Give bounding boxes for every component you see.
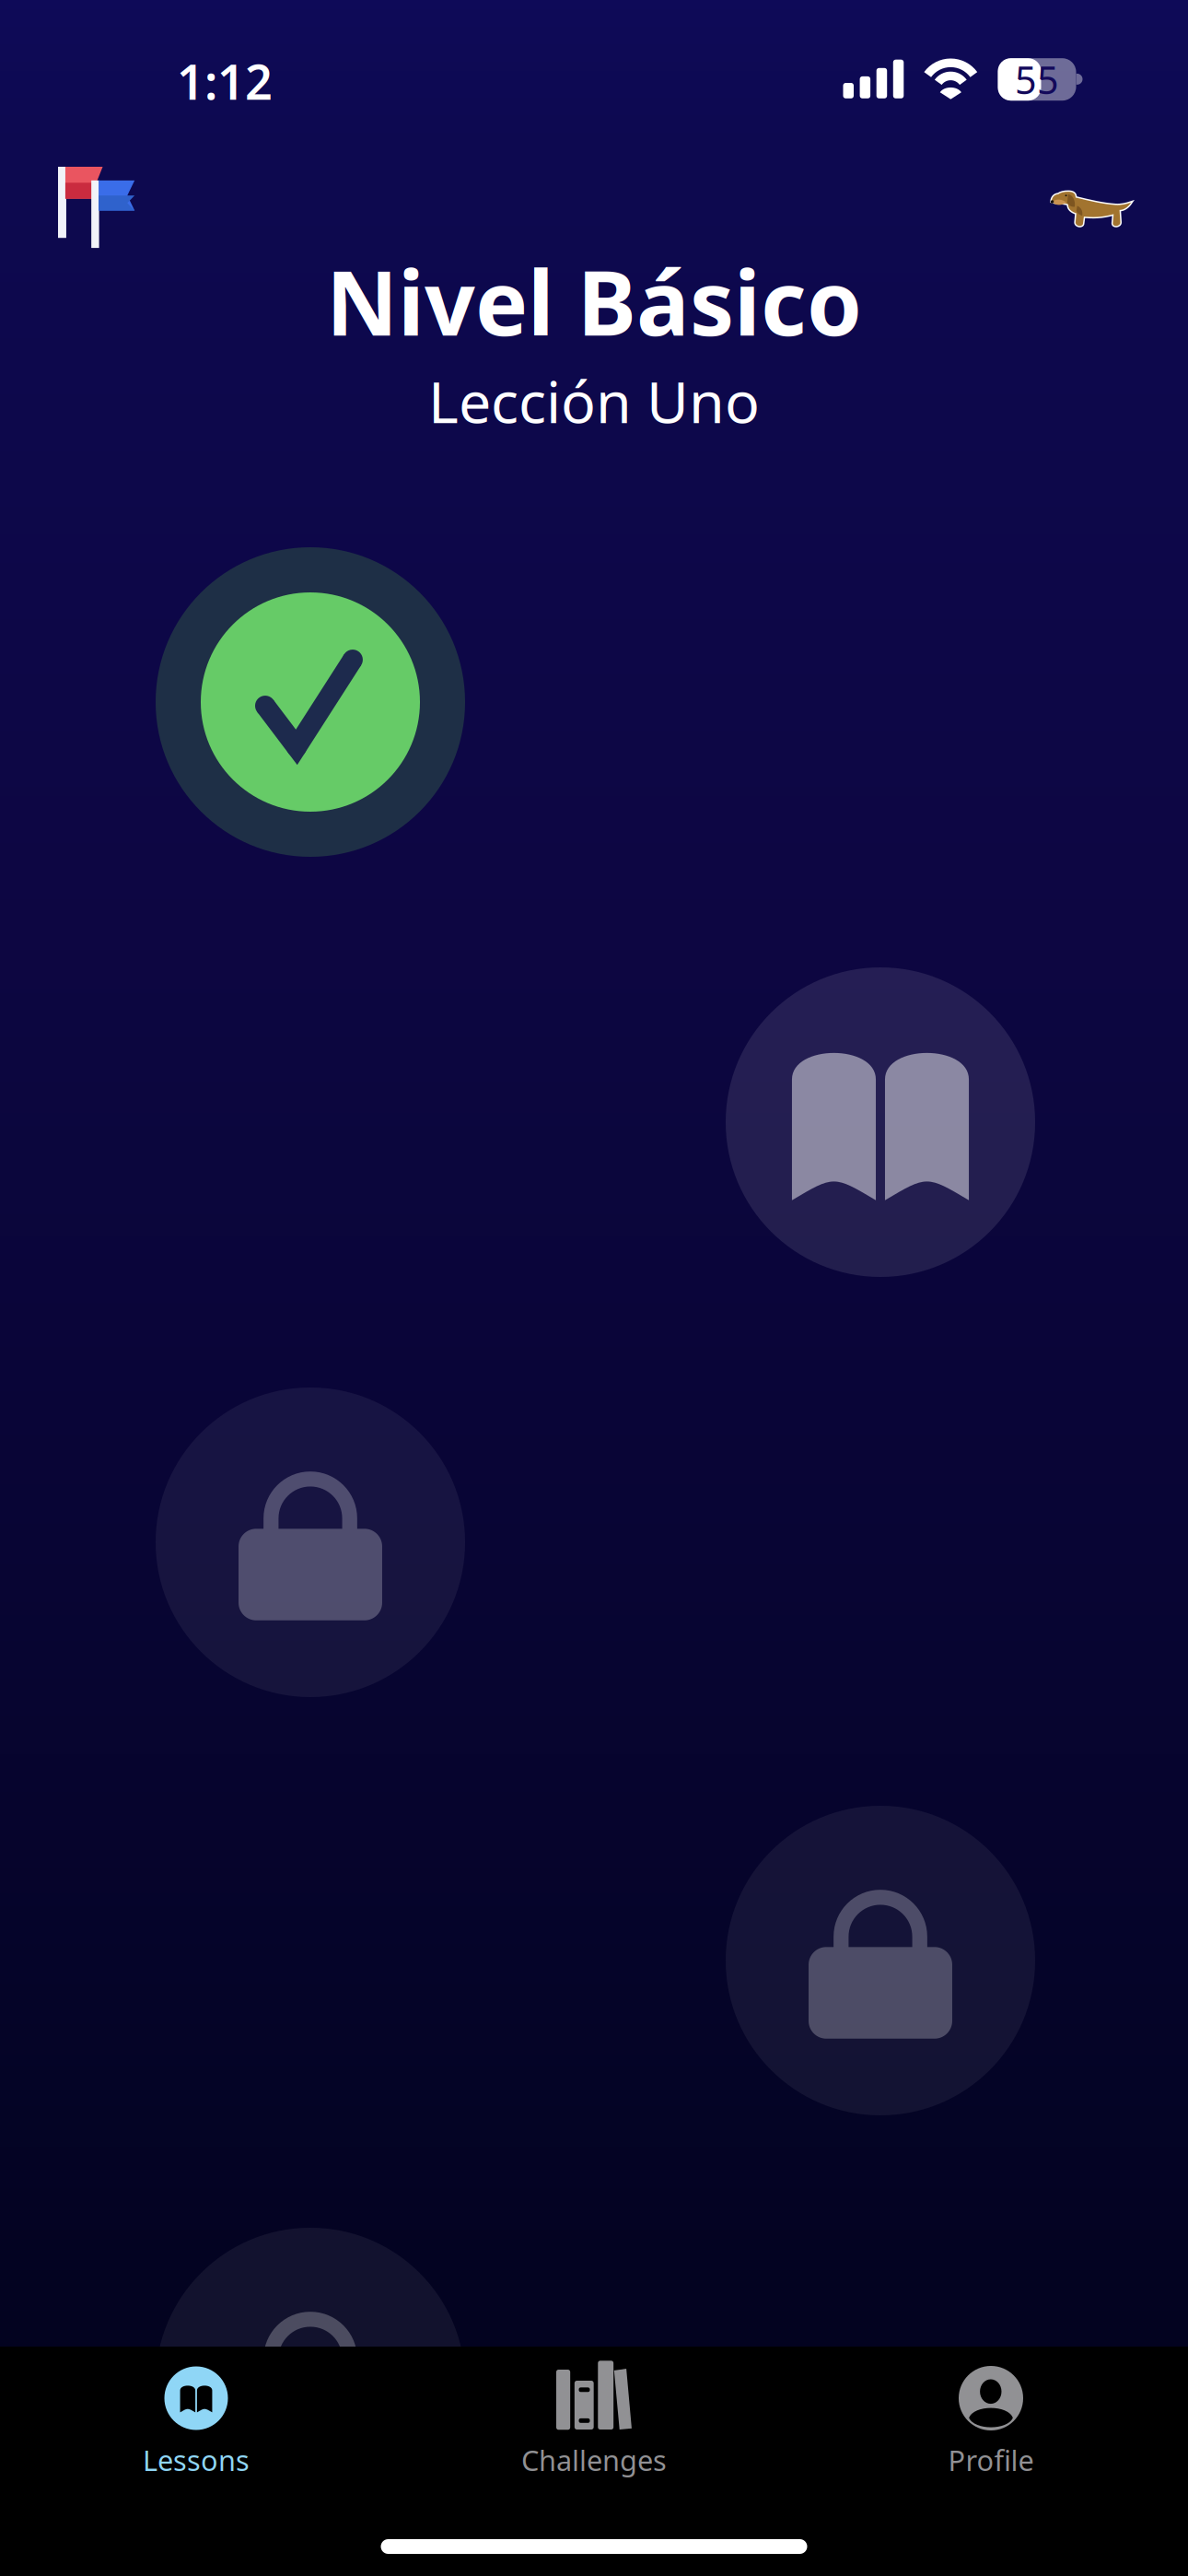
button[interactable]: Language bbox=[38, 144, 154, 260]
button[interactable]: Profile bbox=[802, 2347, 1180, 2531]
button[interactable]: Mascot bbox=[1041, 158, 1142, 260]
button[interactable]: Lesson 5, locked bbox=[156, 2228, 465, 2537]
button[interactable]: Lesson 3, locked bbox=[156, 1388, 465, 1697]
staticText: Nivel Básico bbox=[326, 243, 862, 360]
button[interactable]: Lessons bbox=[7, 2347, 385, 2531]
staticText: Profile bbox=[948, 2441, 1034, 2479]
button[interactable]: Lesson 2 bbox=[726, 967, 1035, 1277]
staticText: Challenges bbox=[521, 2441, 667, 2479]
button[interactable]: Lesson 1, completed bbox=[156, 547, 465, 857]
staticText: Lección Uno bbox=[428, 362, 760, 439]
staticText: Lessons bbox=[143, 2441, 250, 2479]
staticText: 1:12 bbox=[177, 49, 273, 113]
staticText: 55 bbox=[1015, 54, 1059, 105]
button[interactable]: Challenges bbox=[405, 2347, 783, 2531]
button[interactable]: Lesson 4, locked bbox=[726, 1806, 1035, 2115]
